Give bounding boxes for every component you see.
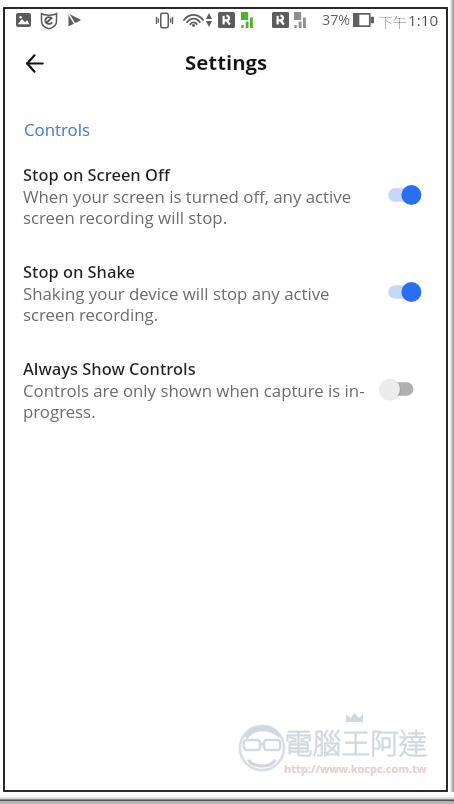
staticText: screen recording.	[23, 303, 159, 326]
staticText: Controls are only shown when capture is …	[23, 379, 365, 402]
staticText: Stop on Screen Off	[23, 163, 170, 185]
staticText: Shaking your device will stop any active	[23, 282, 330, 305]
staticText: Settings	[185, 48, 268, 76]
staticText: Always Show Controls	[23, 357, 196, 379]
staticText: 1:10	[408, 10, 439, 31]
staticText: When your screen is turned off, any acti…	[23, 185, 352, 208]
staticText: 電腦王阿達	[284, 721, 428, 763]
staticText: Stop on Shake	[23, 260, 136, 282]
button[interactable]: Controls	[10, 112, 210, 142]
button[interactable]: Stop on Screen Off	[4, 156, 447, 246]
button[interactable]: Always Show Controls	[4, 351, 447, 441]
staticText: Controls	[24, 118, 90, 141]
button[interactable]: Stop on Shake	[4, 253, 447, 343]
staticText: screen recording will stop.	[23, 206, 228, 229]
button[interactable]: Back	[14, 43, 54, 83]
staticText: http://www.kocpc.com.tw	[284, 761, 427, 776]
staticText: 37%	[322, 10, 351, 29]
staticText: 下午	[378, 11, 408, 32]
staticText: progress.	[23, 400, 96, 423]
